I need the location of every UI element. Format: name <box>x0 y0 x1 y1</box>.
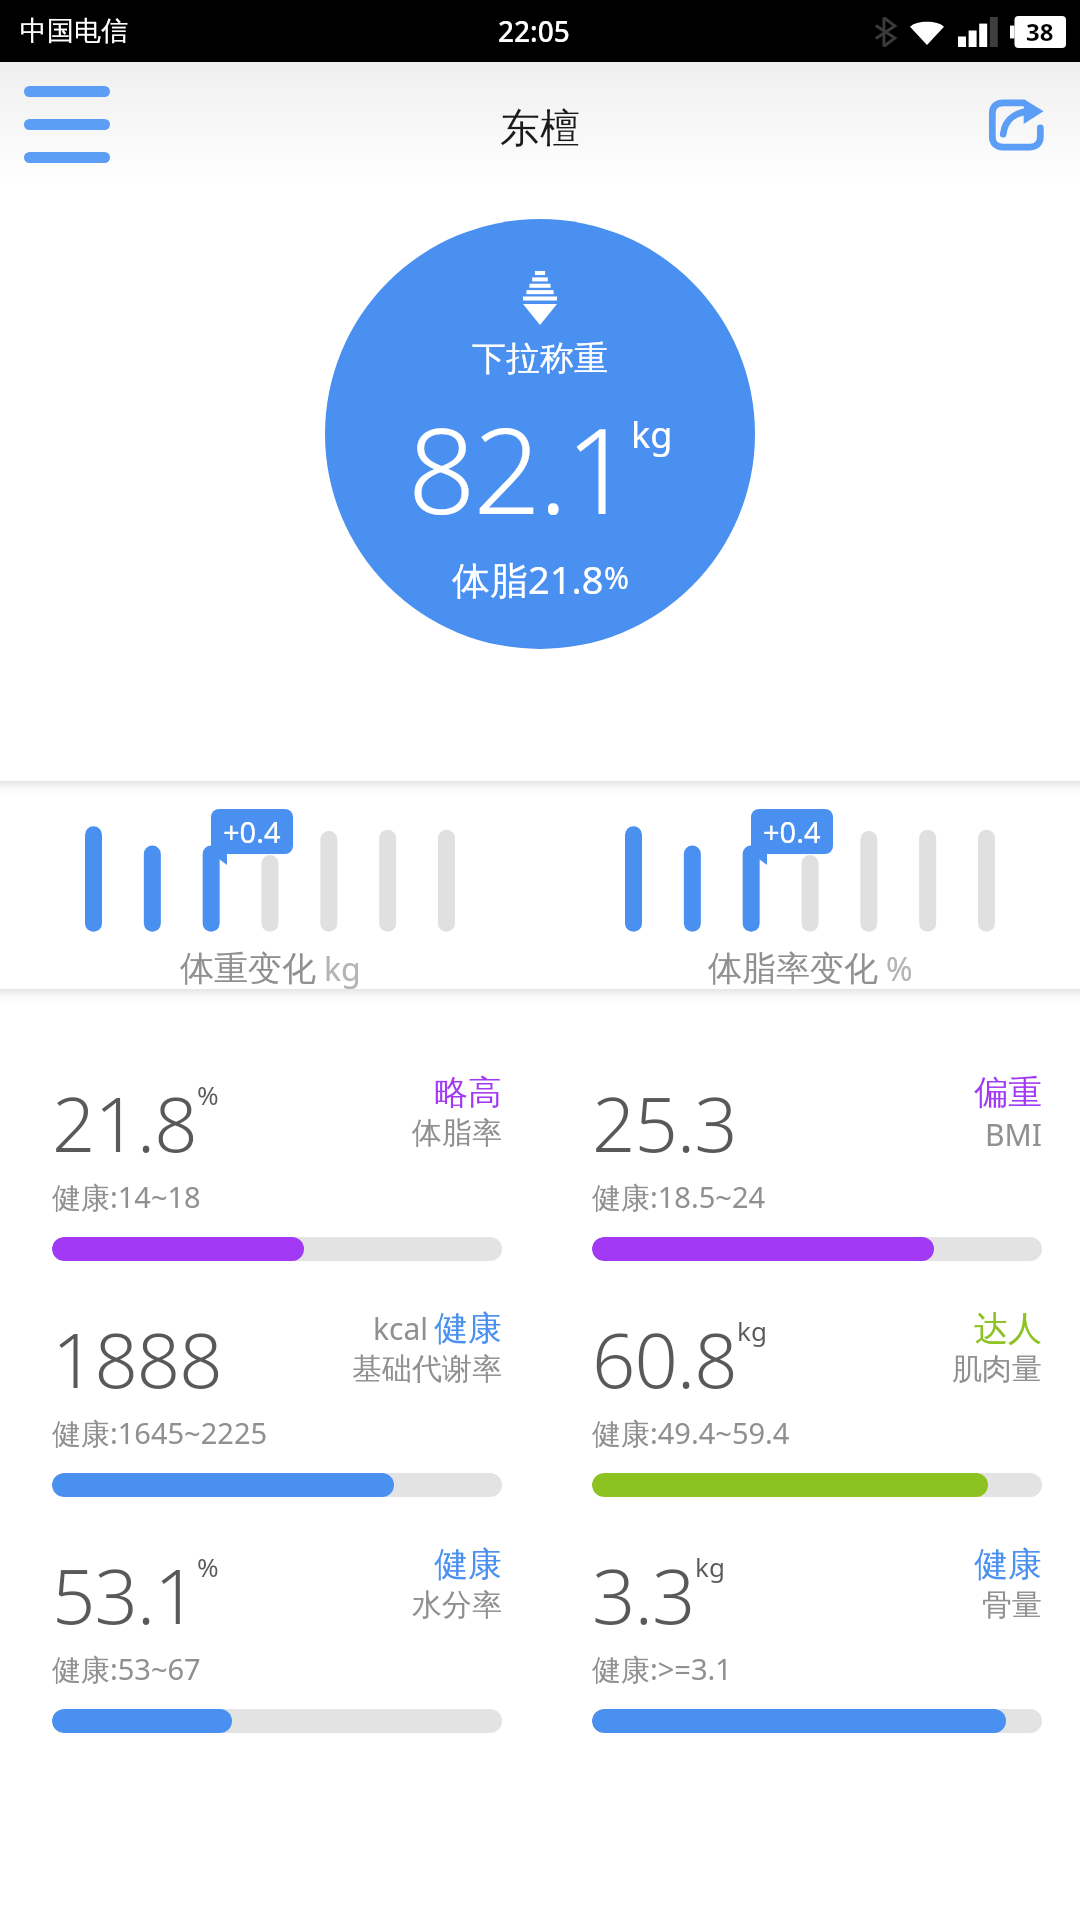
staticText: 82.1 <box>408 388 631 549</box>
staticText: 东檀 <box>500 103 580 153</box>
staticText: kg <box>737 1313 767 1348</box>
staticText: 健康:>=3.1 <box>592 1649 732 1689</box>
staticText: kg <box>695 1549 725 1584</box>
staticText: 60.8 <box>592 1307 737 1411</box>
button[interactable]: 53.1 <box>52 1543 502 1733</box>
staticText: BMI <box>985 1114 1042 1155</box>
staticText: 偏重 <box>974 1071 1042 1114</box>
staticText: 健康 <box>974 1543 1042 1586</box>
staticText: 中国电信 <box>20 14 128 48</box>
staticText: kcal <box>373 1308 428 1349</box>
staticText: 健康:53~67 <box>52 1649 201 1689</box>
staticText: 健康 <box>434 1307 502 1350</box>
staticText: 25.3 <box>592 1071 737 1175</box>
staticText: 健康:18.5~24 <box>592 1177 766 1217</box>
button[interactable]: 60.8 <box>592 1307 1042 1497</box>
staticText: 肌肉量 <box>952 1350 1042 1388</box>
button[interactable]: 21.8 <box>52 1071 502 1261</box>
staticText: 水分率 <box>412 1586 502 1624</box>
staticText: 3.3 <box>592 1543 695 1647</box>
button[interactable]: 3.3 <box>592 1543 1042 1733</box>
staticText: % <box>197 1549 219 1584</box>
button[interactable]: Share <box>974 82 1058 166</box>
staticText: kg <box>631 410 673 459</box>
staticText: 38 <box>1026 15 1054 48</box>
staticText: % <box>886 947 913 989</box>
staticText: 骨量 <box>982 1586 1042 1624</box>
button[interactable]: Menu <box>24 84 112 164</box>
staticText: +0.4 <box>223 812 281 851</box>
staticText: 下拉称重 <box>472 337 608 380</box>
button[interactable]: 下拉称重 <box>325 219 755 649</box>
staticText: % <box>197 1077 219 1112</box>
staticText: 体重变化 <box>180 947 316 989</box>
staticText: 略高 <box>434 1071 502 1114</box>
staticText: 22:05 <box>498 12 570 50</box>
staticText: 体脂21.8 <box>452 553 604 605</box>
staticText: 体脂率变化 <box>708 947 878 989</box>
staticText: 健康:49.4~59.4 <box>592 1413 790 1453</box>
staticText: 1888 <box>52 1307 222 1411</box>
button[interactable]: +0.4 <box>0 797 540 989</box>
button[interactable]: +0.4 <box>540 797 1080 989</box>
staticText: % <box>604 557 629 598</box>
staticText: 健康 <box>434 1543 502 1586</box>
staticText: 健康:14~18 <box>52 1177 201 1217</box>
staticText: +0.4 <box>763 812 821 851</box>
button[interactable]: 25.3 <box>592 1071 1042 1261</box>
button[interactable]: 1888 <box>52 1307 502 1497</box>
staticText: 21.8 <box>52 1071 197 1175</box>
staticText: 体脂率 <box>412 1114 502 1152</box>
staticText: 53.1 <box>52 1543 197 1647</box>
staticText: 健康:1645~2225 <box>52 1413 268 1453</box>
staticText: 基础代谢率 <box>352 1350 502 1388</box>
staticText: 达人 <box>974 1307 1042 1350</box>
staticText: kg <box>324 947 361 989</box>
